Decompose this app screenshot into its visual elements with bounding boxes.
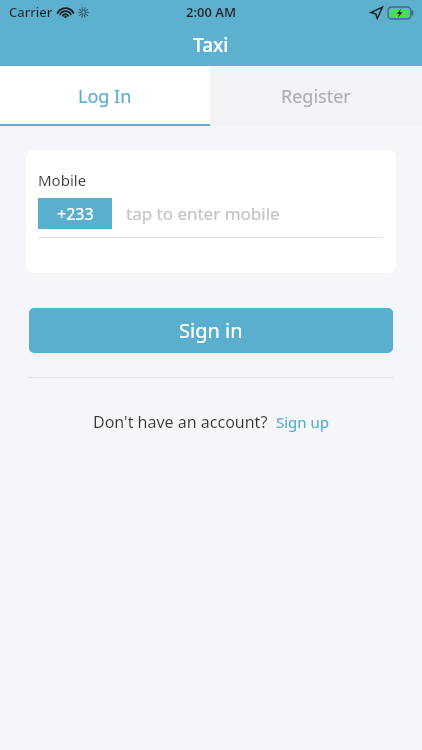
button[interactable]: Sign in bbox=[29, 308, 393, 353]
staticText: Taxi bbox=[193, 32, 229, 58]
staticText: Log In bbox=[78, 84, 132, 109]
button[interactable]: tap to enter mobile bbox=[126, 202, 383, 225]
staticText: Don't have an account? bbox=[93, 411, 268, 433]
staticText: +233 bbox=[57, 203, 94, 225]
button[interactable]: +233 bbox=[38, 198, 112, 229]
staticText: tap to enter mobile bbox=[126, 202, 280, 225]
staticText: Carrier bbox=[9, 3, 53, 21]
staticText: Register bbox=[281, 84, 351, 109]
button[interactable]: Sign up bbox=[276, 412, 329, 432]
button[interactable]: Log In bbox=[0, 66, 210, 126]
staticText: Mobile bbox=[38, 170, 87, 190]
button[interactable]: Register bbox=[210, 66, 422, 126]
staticText: Sign in bbox=[179, 317, 243, 344]
staticText: 2:00 AM bbox=[186, 3, 237, 21]
staticText: Sign up bbox=[276, 412, 329, 432]
